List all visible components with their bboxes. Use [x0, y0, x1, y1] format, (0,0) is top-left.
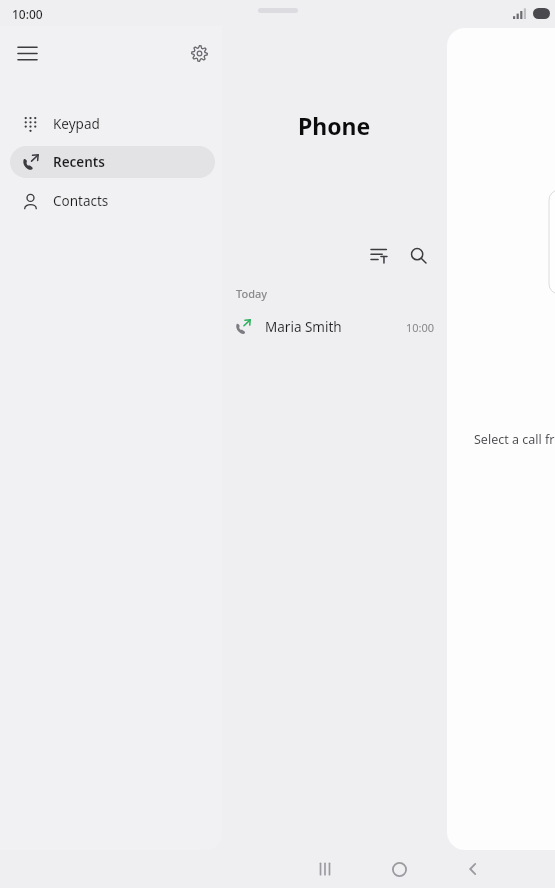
button[interactable]: Recents: [10, 146, 215, 178]
button[interactable]: Menu: [8, 34, 46, 72]
staticText: Keypad: [53, 115, 100, 133]
staticText: Recents: [53, 153, 106, 171]
staticText: Today: [236, 286, 268, 301]
button[interactable]: Back: [451, 852, 495, 886]
staticText: 10:00: [406, 320, 435, 335]
button[interactable]: Sort: [362, 238, 396, 272]
button[interactable]: Search: [401, 238, 435, 272]
staticText: 10:00: [12, 6, 43, 22]
button[interactable]: Maria Smith: [222, 309, 447, 345]
button[interactable]: More options: [440, 238, 474, 272]
staticText: Maria Smith: [265, 318, 342, 336]
button[interactable]: Home: [377, 852, 421, 886]
staticText: Select a call from: [474, 431, 555, 448]
button[interactable]: Recent apps: [303, 852, 347, 886]
button[interactable]: Keypad: [10, 108, 215, 140]
button[interactable]: Contacts: [10, 185, 215, 217]
staticText: Contacts: [53, 192, 109, 210]
staticText: Phone: [298, 110, 371, 141]
button[interactable]: Settings: [180, 34, 218, 72]
